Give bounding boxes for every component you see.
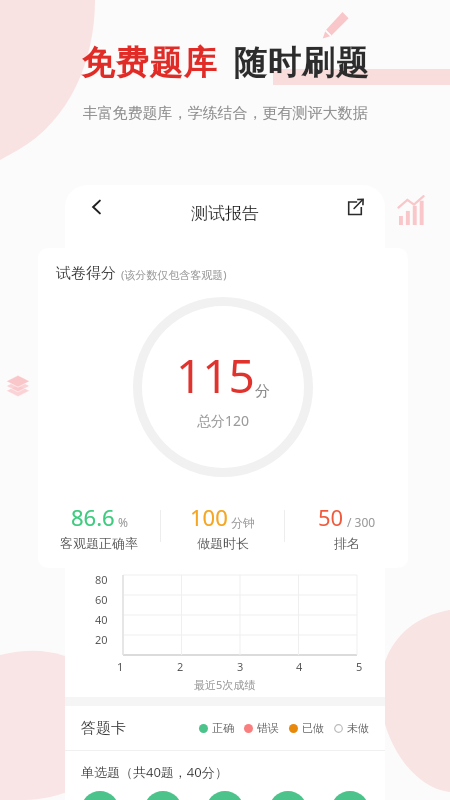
button[interactable]: 3 — [206, 791, 244, 800]
staticText: 试卷得分 — [56, 264, 116, 283]
button[interactable]: 86.6 — [38, 502, 160, 551]
staticText: 单选题（共40题，40分） — [81, 763, 228, 781]
staticText: 做题时长 — [197, 535, 249, 551]
staticText: / 300 — [347, 514, 376, 530]
staticText: 分 — [255, 382, 270, 401]
staticText: 免费题库 — [81, 42, 217, 84]
staticText: 86.6 — [71, 502, 115, 532]
staticText: 正确 — [212, 721, 234, 735]
button[interactable]: 50 — [285, 502, 408, 551]
staticText: 随时刷题 — [233, 42, 369, 84]
staticText: 60 — [95, 592, 108, 607]
staticText: 3 — [237, 659, 244, 674]
button[interactable]: 1 — [81, 791, 119, 800]
staticText: 答题卡 — [81, 719, 126, 738]
staticText: 20 — [95, 632, 108, 647]
staticText: 丰富免费题库，学练结合，更有测评大数据 — [12, 104, 438, 123]
staticText: 客观题正确率 — [60, 535, 138, 551]
staticText: 5 — [356, 659, 363, 674]
button[interactable]: 2 — [144, 791, 182, 800]
staticText: 已做 — [302, 721, 324, 735]
staticText: (该分数仅包含客观题) — [121, 267, 227, 282]
staticText: 2 — [177, 659, 184, 674]
button[interactable]: Back — [75, 185, 119, 229]
staticText: 未做 — [347, 721, 369, 735]
button[interactable]: 4 — [269, 791, 307, 800]
staticText: 分钟 — [231, 515, 255, 530]
staticText: 错误 — [257, 721, 279, 735]
staticText: 总分120 — [197, 411, 250, 430]
staticText: 100 — [190, 502, 228, 532]
staticText: 50 — [318, 502, 344, 532]
button[interactable]: 5 — [331, 791, 369, 800]
staticText: 最近5次成绩 — [194, 677, 256, 692]
staticText: 排名 — [334, 535, 360, 551]
staticText: % — [118, 514, 128, 530]
button[interactable]: Share — [333, 185, 377, 229]
staticText: 80 — [95, 572, 108, 587]
staticText: 40 — [95, 612, 108, 627]
staticText: 4 — [296, 659, 303, 674]
staticText: 测试报告 — [191, 203, 259, 224]
button[interactable]: 100 — [161, 502, 284, 551]
staticText: 115 — [176, 344, 255, 407]
staticText: 1 — [117, 659, 124, 674]
